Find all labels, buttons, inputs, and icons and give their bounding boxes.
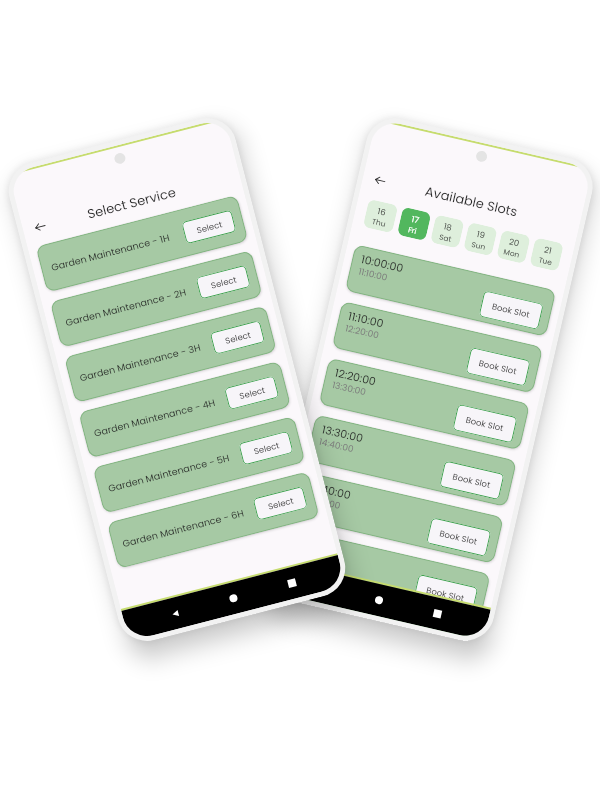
staticText: 14:40:00 bbox=[307, 478, 353, 502]
staticText: 17:00:00 bbox=[284, 592, 325, 604]
button[interactable]: Select bbox=[224, 375, 279, 410]
staticText: 13:30:00 bbox=[321, 421, 365, 445]
button[interactable]: Back bbox=[310, 576, 331, 597]
button[interactable]: Back bbox=[164, 602, 186, 624]
button[interactable]: Garden Maintenance - 4H bbox=[78, 361, 291, 458]
staticText: Sat bbox=[438, 231, 453, 244]
staticText: Garden Maintenance - 1H bbox=[50, 231, 171, 274]
button[interactable]: Garden Maintenance - 3H bbox=[64, 305, 277, 403]
staticText: Thu bbox=[371, 216, 387, 229]
button[interactable]: Book Slot bbox=[413, 574, 478, 614]
button[interactable]: 10:00:00 bbox=[345, 244, 556, 337]
staticText: Select bbox=[210, 274, 238, 292]
button[interactable]: Recent apps bbox=[427, 603, 448, 624]
staticText: 14:40:00 bbox=[318, 436, 355, 456]
button[interactable]: 17:00:00 bbox=[275, 585, 477, 639]
staticText: 15:50:00 bbox=[294, 535, 339, 559]
staticText: Book Slot bbox=[425, 584, 466, 604]
button[interactable]: Garden Maintenance - 2H bbox=[50, 250, 263, 348]
button[interactable]: Book Slot bbox=[439, 460, 504, 500]
staticText: Select Service bbox=[85, 182, 178, 223]
staticText: 17 bbox=[410, 213, 421, 226]
staticText: 12:20:00 bbox=[334, 365, 378, 388]
staticText: Garden Maintenance - 5H bbox=[107, 451, 231, 495]
button[interactable]: Book Slot bbox=[465, 347, 531, 387]
staticText: Mon bbox=[503, 246, 521, 260]
staticText: Fri bbox=[407, 224, 418, 236]
staticText: Garden Maintenance - 4H bbox=[92, 396, 217, 440]
staticText: Select bbox=[195, 218, 224, 236]
button[interactable]: Book Slot bbox=[478, 290, 544, 330]
button[interactable]: Select bbox=[210, 320, 265, 355]
button[interactable]: 21 bbox=[529, 237, 564, 272]
staticText: Book Slot bbox=[478, 357, 518, 377]
button[interactable]: Select bbox=[195, 265, 251, 300]
button[interactable]: Select bbox=[238, 431, 294, 465]
staticText: Select bbox=[252, 439, 281, 457]
button[interactable]: 15:50:00 bbox=[279, 528, 491, 620]
staticText: 17:00:00 bbox=[291, 549, 328, 570]
staticText: 11:10:00 bbox=[357, 265, 389, 285]
staticText: 15:50:00 bbox=[305, 492, 342, 513]
staticText: Tue bbox=[538, 254, 554, 267]
staticText: Book Slot bbox=[438, 527, 479, 548]
staticText: 20 bbox=[508, 235, 521, 249]
button[interactable]: Home bbox=[368, 589, 390, 611]
staticText: 18 bbox=[442, 220, 454, 234]
staticText: 13:30:00 bbox=[331, 379, 368, 399]
staticText: Select bbox=[238, 384, 266, 402]
button[interactable]: 13:30:00 bbox=[306, 414, 517, 507]
button[interactable]: 17 bbox=[397, 207, 431, 241]
staticText: Select bbox=[224, 329, 252, 347]
button[interactable]: 12:20:00 bbox=[319, 358, 530, 450]
button[interactable]: Select bbox=[181, 209, 237, 244]
button[interactable]: 19 bbox=[463, 222, 498, 256]
button[interactable]: Select bbox=[252, 486, 308, 521]
staticText: 11:10:00 bbox=[347, 308, 385, 330]
staticText: Select bbox=[267, 495, 295, 513]
staticText: Book Slot bbox=[464, 414, 505, 434]
button[interactable]: Back bbox=[369, 169, 391, 192]
button[interactable]: Recent apps bbox=[281, 572, 303, 594]
staticText: Book Slot bbox=[491, 300, 531, 321]
button[interactable]: 18 bbox=[430, 214, 465, 249]
staticText: 19 bbox=[476, 228, 487, 242]
button[interactable]: Garden Maintenance - 6H bbox=[107, 471, 320, 569]
button[interactable]: 14:40:00 bbox=[292, 471, 504, 564]
staticText: Book Slot bbox=[451, 471, 492, 491]
staticText: Garden Maintenance - 2H bbox=[64, 285, 188, 329]
staticText: Sun bbox=[470, 239, 487, 252]
button[interactable]: Garden Maintenance - 5H bbox=[93, 416, 305, 514]
button[interactable]: Home bbox=[222, 587, 244, 609]
button[interactable]: 20 bbox=[496, 230, 531, 264]
staticText: Garden Maintenance - 3H bbox=[78, 341, 202, 384]
staticText: 12:20:00 bbox=[344, 322, 381, 343]
staticText: 10:00:00 bbox=[360, 251, 405, 275]
button[interactable]: Back bbox=[29, 215, 52, 238]
button[interactable]: 11:10:00 bbox=[332, 301, 543, 393]
button[interactable]: Garden Maintenance - 1H bbox=[36, 195, 248, 292]
button[interactable]: 16 bbox=[363, 199, 398, 233]
staticText: Garden Maintenance - 6H bbox=[121, 507, 245, 550]
button[interactable]: Book Slot bbox=[426, 517, 491, 557]
staticText: 21 bbox=[543, 244, 553, 257]
staticText: 16 bbox=[376, 205, 388, 219]
button[interactable]: Book Slot bbox=[452, 404, 518, 443]
staticText: Available Slots bbox=[423, 182, 520, 221]
